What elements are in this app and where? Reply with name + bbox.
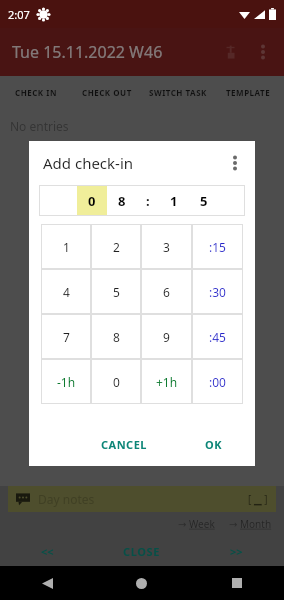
button[interactable]: +1h xyxy=(141,359,192,404)
staticText: Tue 15.11.2022 W46 xyxy=(12,41,163,63)
staticText: 8 xyxy=(118,192,126,210)
button[interactable]: CLOSE xyxy=(94,536,189,566)
staticText: :00 xyxy=(209,374,226,390)
staticText: TEMPLATE xyxy=(226,87,271,98)
button[interactable]: :30 xyxy=(192,269,243,314)
button[interactable]: :00 xyxy=(192,359,243,404)
staticText: 1 xyxy=(170,192,178,210)
staticText: No entries xyxy=(10,118,69,134)
staticText: CHECK IN xyxy=(15,87,57,98)
button[interactable]: CHECK OUT xyxy=(71,76,142,108)
button[interactable]: Edit time xyxy=(214,35,248,69)
staticText: 4 xyxy=(63,284,70,300)
button[interactable]: 5 xyxy=(91,269,141,314)
staticText: → xyxy=(229,517,240,531)
staticText: CANCEL xyxy=(101,437,147,452)
button[interactable]: 3 xyxy=(141,224,192,269)
staticText: Week xyxy=(189,517,215,531)
button[interactable]: 0 xyxy=(39,185,245,216)
staticText: << xyxy=(41,544,54,559)
staticText: :30 xyxy=(209,284,226,300)
button[interactable]: SWITCH TASK xyxy=(142,76,213,108)
staticText: CLOSE xyxy=(123,544,160,559)
button[interactable]: → xyxy=(229,517,272,531)
staticText: +1h xyxy=(156,374,178,390)
button[interactable]: 2 xyxy=(91,224,141,269)
staticText: Day notes xyxy=(38,491,95,507)
staticText: 6 xyxy=(163,284,170,300)
button[interactable]: → xyxy=(178,517,215,531)
staticText: -1h xyxy=(57,374,76,390)
staticText: Month xyxy=(240,517,272,531)
button[interactable]: TEMPLATE xyxy=(213,76,284,108)
staticText: Add check-in xyxy=(43,153,134,173)
staticText: 7 xyxy=(63,329,70,345)
button[interactable]: Recents xyxy=(189,566,284,600)
button[interactable]: Home xyxy=(94,566,189,600)
staticText: >> xyxy=(230,544,243,559)
button[interactable]: 8 xyxy=(91,314,141,359)
button[interactable]: :15 xyxy=(192,224,243,269)
staticText: 5 xyxy=(200,192,208,210)
staticText: 1 xyxy=(63,239,70,255)
staticText: OK xyxy=(205,437,223,452)
button[interactable]: -1h xyxy=(41,359,91,404)
staticText: [ ▁ ] xyxy=(248,492,268,506)
button[interactable]: 7 xyxy=(41,314,91,359)
button[interactable]: 0 xyxy=(91,359,141,404)
staticText: 5 xyxy=(113,284,120,300)
button[interactable]: Back xyxy=(0,566,94,600)
staticText: SWITCH TASK xyxy=(149,87,207,98)
button[interactable]: 1 xyxy=(41,224,91,269)
staticText: CHECK OUT xyxy=(82,87,132,98)
button[interactable]: Day notes xyxy=(8,486,276,512)
staticText: : xyxy=(146,192,150,210)
staticText: 2:07 xyxy=(8,7,30,22)
button[interactable]: CANCEL xyxy=(87,429,161,460)
button[interactable]: OK xyxy=(191,429,237,460)
button[interactable]: >> xyxy=(189,536,284,566)
button[interactable]: More options xyxy=(248,37,278,67)
staticText: → xyxy=(178,517,189,531)
staticText: 8 xyxy=(113,329,120,345)
button[interactable]: Dialog options xyxy=(221,149,249,177)
button[interactable]: 9 xyxy=(141,314,192,359)
button[interactable]: 4 xyxy=(41,269,91,314)
staticText: 9 xyxy=(163,329,170,345)
staticText: :45 xyxy=(209,329,226,345)
button[interactable]: :45 xyxy=(192,314,243,359)
staticText: 3 xyxy=(163,239,170,255)
staticText: :15 xyxy=(209,239,226,255)
button[interactable]: << xyxy=(0,536,94,566)
button[interactable]: CHECK IN xyxy=(0,76,71,108)
staticText: 0 xyxy=(113,374,120,390)
button[interactable]: 6 xyxy=(141,269,192,314)
staticText: 2 xyxy=(113,239,120,255)
staticText: 0 xyxy=(88,192,96,210)
